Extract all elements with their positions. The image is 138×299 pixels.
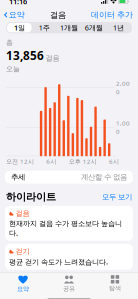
staticText: 모두 보기 (102, 192, 132, 202)
staticText: 탐색 (109, 284, 121, 292)
staticText: 11:16 (9, 0, 27, 6)
button[interactable]: 걸음 (0, 206, 138, 244)
staticText: 평균 걷기 속도가 느려졌습니다. (9, 257, 108, 267)
staticText: 추세 (11, 172, 25, 182)
staticText: 오전 12시 (6, 157, 34, 166)
staticText: 요약 (17, 285, 29, 293)
staticText: 1,000 (116, 119, 130, 136)
staticText: 걷기 (16, 247, 30, 256)
button[interactable]: 요약 (0, 273, 46, 294)
button[interactable]: 1개월 (57, 23, 81, 32)
staticText: 공유 (63, 285, 75, 292)
button[interactable]: 1일 (7, 23, 32, 32)
button[interactable]: 1년 (106, 23, 131, 32)
staticText: 6개월 (85, 23, 103, 32)
staticText: 오후 12시 (69, 157, 97, 166)
button[interactable]: 데이터 추가 (91, 8, 138, 22)
staticText: 오늘 (6, 64, 20, 73)
staticText: 1년 (113, 23, 124, 32)
staticText: 요약 (9, 10, 25, 20)
staticText: 2,000 (116, 79, 130, 96)
button[interactable]: 공유 (46, 273, 92, 294)
button[interactable]: 1주 (32, 23, 57, 32)
staticText: 13,856 (6, 47, 44, 63)
button[interactable]: 모두 보기 (102, 192, 132, 202)
button[interactable]: 걷기 (0, 244, 138, 273)
button[interactable]: 추세 (0, 166, 138, 184)
staticText: 총 (6, 38, 13, 47)
staticText: 걸음 (50, 10, 66, 20)
staticText: 6시 (46, 157, 56, 166)
staticText: 1주 (39, 23, 50, 32)
button[interactable]: 요약 (0, 8, 25, 22)
staticText: 걸음 (45, 53, 59, 62)
staticText: 데이터 추가 (91, 10, 133, 20)
staticText: 1일 (14, 23, 25, 32)
staticText: 1개월 (60, 23, 78, 32)
button[interactable]: 탐색 (92, 273, 138, 294)
staticText: 현재까지 걸음 수가 평소보다 높습니다. (9, 219, 122, 238)
staticText: 6시 (109, 157, 119, 166)
button[interactable]: 6개월 (81, 23, 106, 32)
staticText: 계산할 수 없음 (81, 172, 127, 182)
staticText: 걸음 (16, 209, 30, 218)
staticText: 하이라이트 (6, 191, 56, 203)
